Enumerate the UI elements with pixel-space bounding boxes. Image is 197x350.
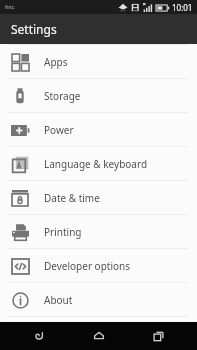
- staticText: Power: [44, 123, 74, 137]
- button[interactable]: Recent apps: [138, 322, 178, 350]
- button[interactable]: About: [0, 283, 197, 316]
- staticText: Settings: [11, 21, 57, 37]
- staticText: htc: [5, 3, 15, 11]
- staticText: Apps: [44, 55, 68, 69]
- button[interactable]: Home: [79, 322, 119, 350]
- staticText: Date & time: [44, 191, 100, 205]
- staticText: Storage: [44, 89, 81, 103]
- button[interactable]: Power: [0, 113, 197, 146]
- button[interactable]: Back: [19, 322, 59, 350]
- button[interactable]: Language & keyboard: [0, 147, 197, 180]
- button[interactable]: Date & time: [0, 181, 197, 214]
- staticText: 10:01: [172, 2, 193, 13]
- staticText: About: [44, 293, 73, 307]
- button[interactable]: Apps: [0, 45, 197, 78]
- staticText: Language & keyboard: [44, 157, 148, 171]
- staticText: Developer options: [44, 259, 131, 273]
- button[interactable]: Printing: [0, 215, 197, 248]
- button[interactable]: Developer options: [0, 249, 197, 282]
- staticText: Printing: [44, 225, 82, 239]
- button[interactable]: Storage: [0, 79, 197, 112]
